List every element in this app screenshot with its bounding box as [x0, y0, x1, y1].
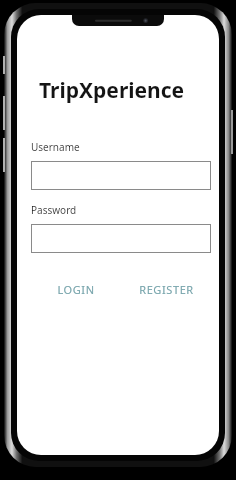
staticText: LOGIN	[57, 282, 95, 297]
button[interactable]: Text input field	[31, 224, 211, 253]
button[interactable]: LOGIN	[31, 278, 121, 301]
staticText: Username	[31, 140, 80, 154]
staticText: TripXperience	[39, 76, 185, 105]
button[interactable]: REGISTER	[121, 278, 211, 301]
staticText: REGISTER	[139, 282, 194, 297]
button[interactable]: Text input field	[31, 161, 211, 190]
staticText: Password	[31, 203, 77, 217]
